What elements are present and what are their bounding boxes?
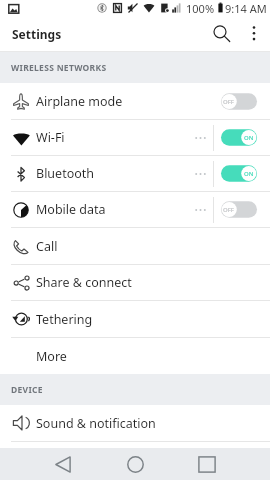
staticText: Wi-Fi: [36, 129, 65, 146]
staticText: Mobile data: [36, 201, 106, 218]
button[interactable]: Search: [201, 16, 241, 51]
button[interactable]: Off: [221, 201, 257, 218]
button[interactable]: Back: [27, 448, 99, 480]
button[interactable]: Airplane mode: [0, 83, 270, 119]
button[interactable]: More options: [241, 16, 267, 51]
button[interactable]: On: [221, 165, 257, 182]
staticText: Airplane mode: [36, 93, 123, 110]
staticText: Sound & notification: [36, 415, 156, 432]
button[interactable]: Share & connect: [0, 265, 270, 300]
staticText: OFF: [223, 206, 235, 214]
staticText: Share & connect: [36, 274, 132, 291]
button[interactable]: Off: [221, 93, 257, 110]
staticText: Settings: [12, 26, 62, 42]
button[interactable]: On: [221, 129, 257, 146]
button[interactable]: Bluetooth: [0, 156, 270, 191]
button[interactable]: Tethering: [0, 301, 270, 337]
button[interactable]: Call: [0, 228, 270, 264]
staticText: ON: [244, 170, 254, 178]
staticText: OFF: [223, 98, 235, 106]
staticText: Call: [36, 238, 58, 255]
button[interactable]: Mobile data: [0, 192, 270, 227]
staticText: DEVICE: [11, 384, 43, 396]
button[interactable]: Sound & notification: [0, 405, 270, 441]
staticText: 9:14 AM: [225, 1, 267, 16]
staticText: WIRELESS NETWORKS: [11, 62, 107, 74]
staticText: More: [36, 348, 67, 365]
staticText: 100%: [186, 1, 215, 16]
button[interactable]: Wi-Fi: [0, 120, 270, 155]
button[interactable]: Recents: [171, 448, 243, 480]
button[interactable]: More: [0, 338, 270, 374]
staticText: ON: [244, 134, 254, 142]
staticText: Tethering: [36, 311, 93, 328]
staticText: Bluetooth: [36, 165, 95, 182]
button[interactable]: Home: [99, 448, 171, 480]
